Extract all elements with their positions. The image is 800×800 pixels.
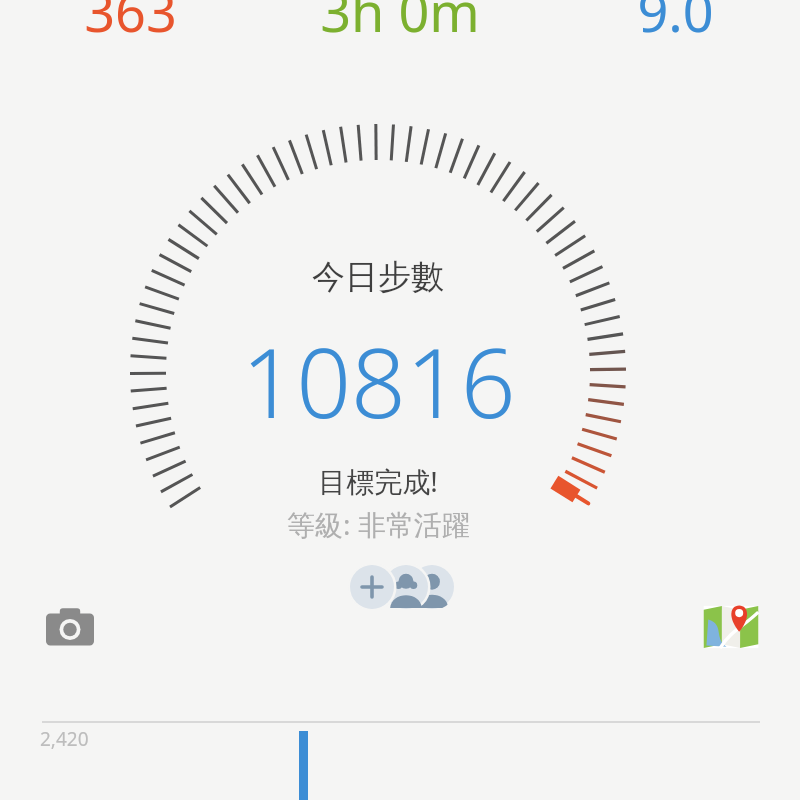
- staticText: 9.0: [637, 0, 714, 38]
- button[interactable]: Map: [700, 596, 762, 658]
- button[interactable]: 363: [40, 0, 220, 38]
- button[interactable]: 3h 0m: [290, 0, 510, 38]
- staticText: 3h 0m: [320, 0, 480, 38]
- button[interactable]: Add friends: [348, 564, 456, 610]
- staticText: 363: [84, 0, 177, 38]
- button[interactable]: 9.0: [585, 0, 765, 38]
- staticText: 目標完成!: [318, 462, 438, 498]
- staticText: 10816: [241, 315, 516, 425]
- staticText: 2,420: [40, 726, 89, 752]
- staticText: 等級: 非常活躍: [287, 505, 470, 541]
- button[interactable]: Camera: [40, 598, 100, 658]
- staticText: 今日步數: [312, 256, 444, 298]
